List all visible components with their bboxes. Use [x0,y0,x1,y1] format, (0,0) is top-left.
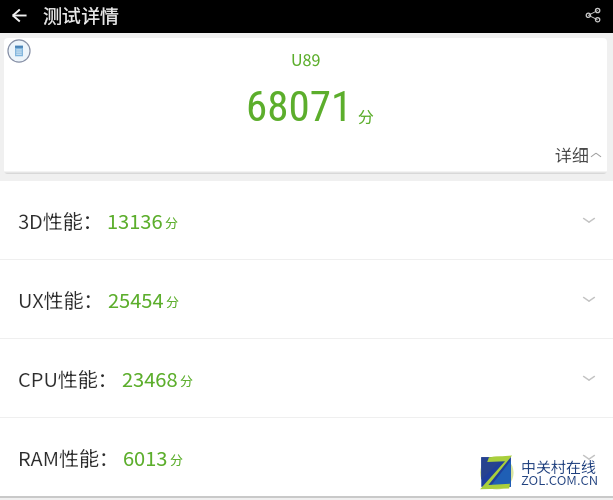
staticText: 13136 [107,206,163,235]
button[interactable]: U89 [4,38,607,174]
staticText: 6013 [123,443,168,472]
button[interactable]: UX性能： [0,260,613,338]
staticText: 分 [170,450,184,469]
button[interactable]: Back [5,0,33,32]
staticText: 68071 [246,81,353,131]
staticText: 分 [358,104,375,127]
staticText: 分 [166,292,180,311]
staticText: 23468 [122,364,178,393]
staticText: 分 [165,213,179,232]
staticText: ZOL.COM.CN [521,470,599,489]
staticText: U89 [291,47,321,70]
staticText: UX性能： [18,285,104,314]
staticText: RAM性能： [18,443,119,472]
staticText: 详细 [555,142,589,167]
staticText: 3D性能： [18,206,103,235]
staticText: 测试详情 [43,1,120,29]
button[interactable]: CPU性能： [0,339,613,417]
staticText: 分 [180,371,194,390]
button[interactable]: Share [578,0,608,31]
button[interactable]: 详细 [555,142,602,167]
staticText: 25454 [108,285,164,314]
button[interactable]: RAM性能： [0,418,613,496]
staticText: CPU性能： [18,364,118,393]
staticText: 中关村在线 [521,456,597,478]
button[interactable]: 3D性能： [0,181,613,259]
